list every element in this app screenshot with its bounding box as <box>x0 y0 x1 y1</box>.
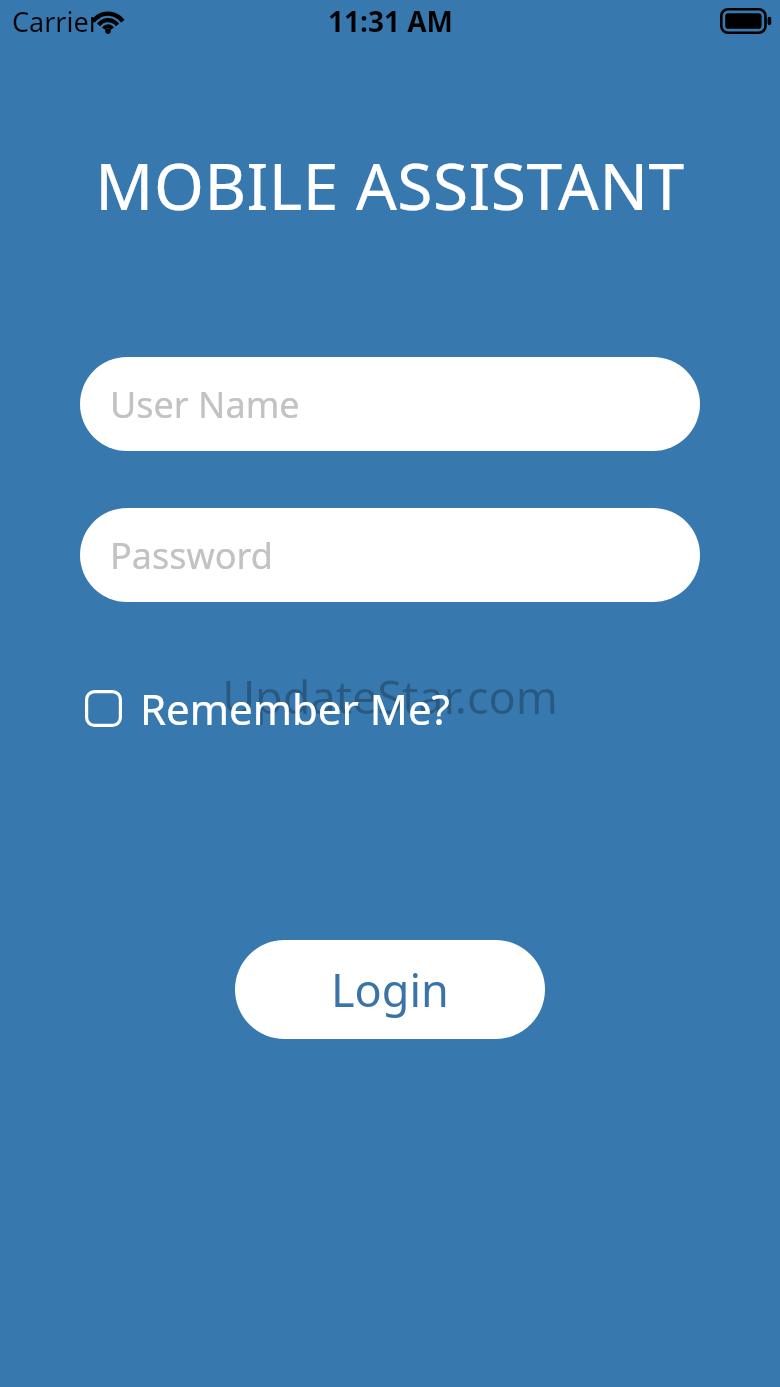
button[interactable]: Login <box>235 940 545 1039</box>
staticText: Login <box>331 959 449 1020</box>
button[interactable]: Password input field <box>80 508 700 602</box>
other: Battery full <box>720 8 772 34</box>
staticText: UpdateStar.com <box>0 666 780 727</box>
other: Wi-Fi signal <box>90 7 126 35</box>
button[interactable]: Remember Me? <box>80 676 450 740</box>
staticText: Remember Me? <box>140 680 450 737</box>
staticText: User Name <box>110 380 300 429</box>
staticText: Password <box>110 531 273 580</box>
staticText: 11:31 AM <box>328 2 453 40</box>
button[interactable]: User Name input field <box>80 357 700 451</box>
staticText: Carrier <box>12 3 100 40</box>
staticText: MOBILE ASSISTANT <box>0 142 780 229</box>
